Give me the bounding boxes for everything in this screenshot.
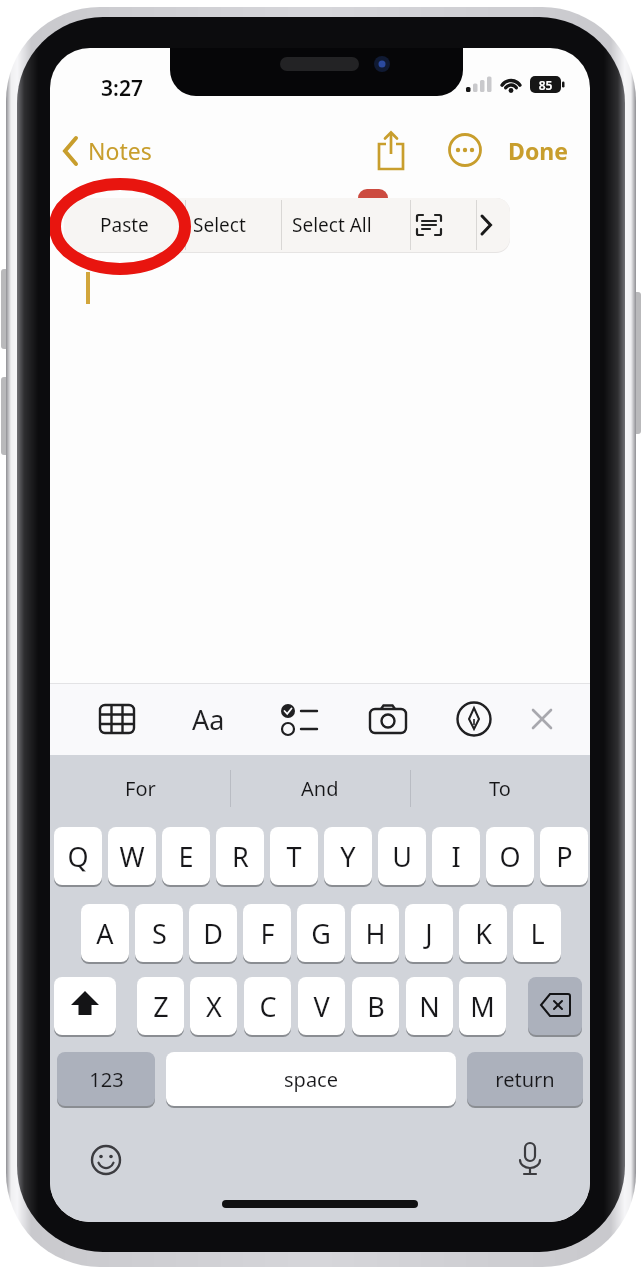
button[interactable]: Select All — [267, 198, 396, 252]
staticText: And — [301, 775, 339, 802]
button[interactable] — [94, 701, 140, 737]
button[interactable]: Aa — [180, 698, 236, 740]
staticText: B — [367, 988, 385, 1025]
button[interactable]: K — [459, 904, 507, 962]
staticText: L — [530, 915, 545, 952]
button[interactable]: And — [230, 755, 410, 822]
staticText: space — [284, 1066, 338, 1093]
button[interactable]: B — [352, 977, 399, 1035]
staticText: Notes — [88, 135, 168, 181]
button[interactable]: 123 — [57, 1052, 155, 1106]
button[interactable]: E — [162, 827, 210, 885]
staticText: Aa — [192, 701, 225, 738]
button[interactable] — [90, 1144, 122, 1176]
staticText: D — [203, 915, 223, 952]
button[interactable] — [462, 198, 510, 252]
staticText: J — [425, 915, 433, 952]
button[interactable] — [364, 701, 412, 737]
button[interactable]: To — [410, 755, 590, 822]
staticText: 3:27 — [92, 74, 152, 116]
staticText: Paste — [100, 212, 149, 238]
staticText: X — [206, 988, 222, 1025]
staticText: E — [178, 838, 194, 875]
staticText: Q — [67, 838, 89, 875]
staticText: W — [119, 838, 145, 875]
button[interactable]: M — [459, 977, 506, 1035]
button[interactable]: space — [166, 1052, 456, 1106]
staticText: U — [392, 838, 412, 875]
button[interactable]: W — [108, 827, 156, 885]
button[interactable] — [54, 977, 116, 1035]
button[interactable]: L — [513, 904, 561, 962]
staticText: N — [419, 988, 440, 1025]
button[interactable]: S — [135, 904, 183, 962]
button[interactable]: Q — [54, 827, 102, 885]
staticText: P — [556, 838, 573, 875]
button[interactable]: G — [297, 904, 345, 962]
button[interactable]: R — [216, 827, 264, 885]
button[interactable]: H — [351, 904, 399, 962]
button[interactable]: N — [406, 977, 453, 1035]
button[interactable]: return — [467, 1052, 583, 1106]
button[interactable]: A — [81, 904, 129, 962]
button[interactable] — [502, 132, 578, 168]
button[interactable]: Y — [324, 827, 372, 885]
staticText: G — [311, 915, 331, 952]
staticText: 123 — [89, 1066, 124, 1093]
button[interactable] — [377, 130, 405, 172]
staticText: 85 — [530, 77, 561, 101]
button[interactable]: C — [244, 977, 291, 1035]
button[interactable] — [396, 198, 462, 252]
button[interactable]: V — [298, 977, 345, 1035]
button[interactable]: Paste — [72, 198, 177, 252]
button[interactable]: Z — [137, 977, 184, 1035]
staticText: O — [499, 838, 521, 875]
staticText: For — [125, 775, 156, 802]
button[interactable] — [272, 701, 326, 737]
button[interactable] — [448, 133, 482, 167]
button[interactable]: P — [540, 827, 588, 885]
button[interactable]: F — [243, 904, 291, 962]
staticText: K — [475, 915, 492, 952]
button[interactable]: Select — [171, 198, 267, 252]
staticText: V — [313, 988, 330, 1025]
button[interactable]: J — [405, 904, 453, 962]
button[interactable] — [524, 703, 560, 735]
button[interactable] — [58, 132, 168, 172]
staticText: To — [489, 775, 511, 802]
staticText: Z — [153, 988, 169, 1025]
button[interactable]: D — [189, 904, 237, 962]
staticText: Select — [193, 212, 246, 238]
button[interactable] — [452, 699, 496, 739]
button[interactable]: T — [270, 827, 318, 885]
staticText: T — [286, 838, 302, 875]
button[interactable]: O — [486, 827, 534, 885]
button[interactable]: U — [378, 827, 426, 885]
staticText: F — [260, 915, 275, 952]
staticText: I — [451, 838, 461, 875]
staticText: R — [232, 838, 249, 875]
staticText: return — [495, 1066, 555, 1093]
button[interactable]: For — [50, 755, 230, 822]
staticText: H — [365, 915, 386, 952]
staticText: C — [259, 988, 277, 1025]
staticText: Y — [340, 838, 356, 875]
staticText: M — [470, 988, 495, 1025]
button[interactable] — [516, 1142, 544, 1178]
button[interactable]: X — [190, 977, 237, 1035]
button[interactable] — [528, 977, 582, 1035]
staticText: Select All — [292, 212, 372, 238]
staticText: Done — [506, 135, 570, 181]
staticText: A — [96, 915, 114, 952]
button[interactable]: I — [432, 827, 480, 885]
staticText: S — [152, 915, 167, 952]
